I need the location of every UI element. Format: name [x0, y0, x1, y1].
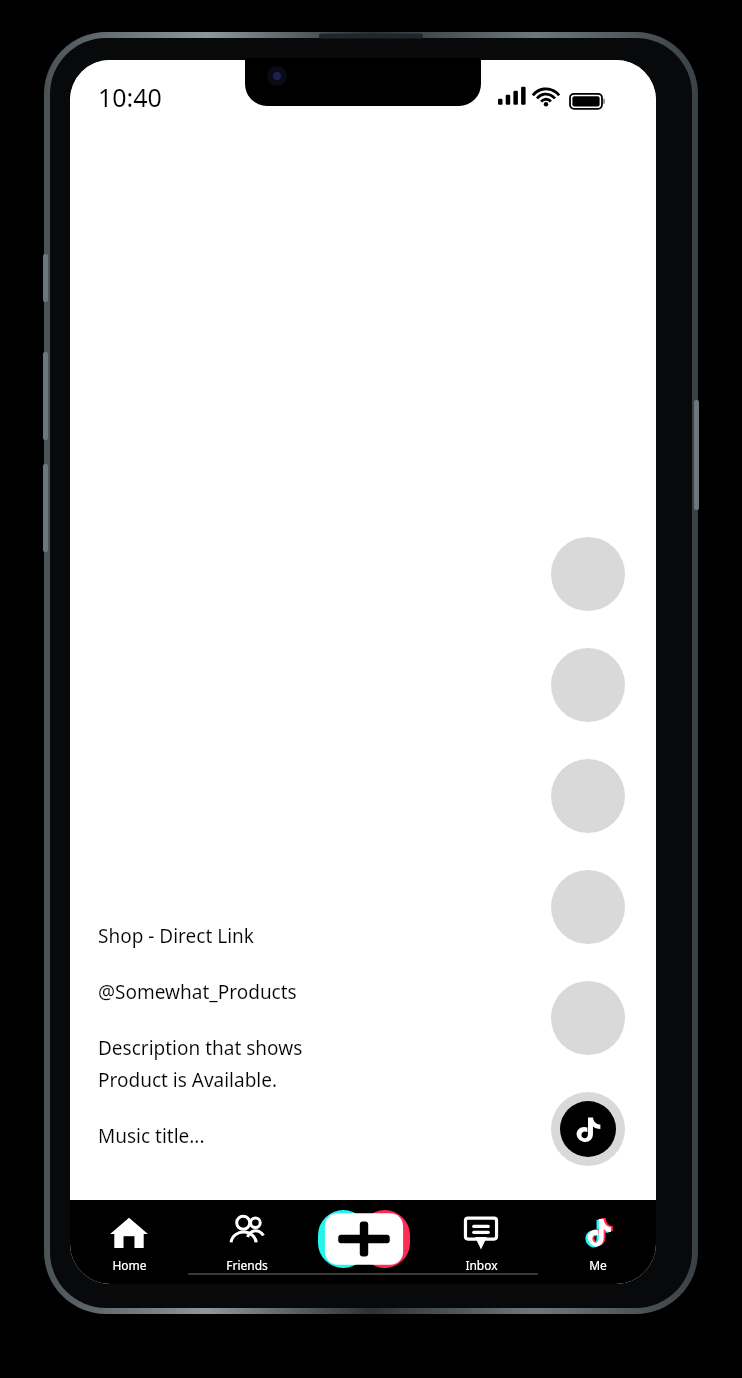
- button[interactable]: Action: [551, 648, 625, 722]
- button[interactable]: Inbox: [422, 1200, 539, 1284]
- staticText: Home: [112, 1257, 147, 1273]
- button[interactable]: Action: [551, 870, 625, 944]
- button[interactable]: Music disc: [551, 1092, 625, 1166]
- staticText: Product is Available.: [98, 1067, 278, 1093]
- button[interactable]: Action: [551, 537, 625, 611]
- staticText: Music title...: [98, 1123, 205, 1149]
- staticText: Friends: [226, 1257, 268, 1273]
- button[interactable]: Friends: [188, 1200, 305, 1284]
- staticText: Inbox: [465, 1257, 498, 1273]
- staticText: 10:40: [98, 80, 162, 114]
- button[interactable]: Action: [551, 759, 625, 833]
- button[interactable]: Home: [70, 1200, 188, 1284]
- button[interactable]: Me: [539, 1200, 656, 1284]
- button[interactable]: Create: [318, 1210, 410, 1268]
- staticText: @Somewhat_Products: [98, 979, 297, 1005]
- staticText: Me: [589, 1257, 607, 1273]
- staticText: Description that shows: [98, 1035, 303, 1061]
- button[interactable]: Action: [551, 981, 625, 1055]
- staticText: Shop - Direct Link: [98, 923, 254, 949]
